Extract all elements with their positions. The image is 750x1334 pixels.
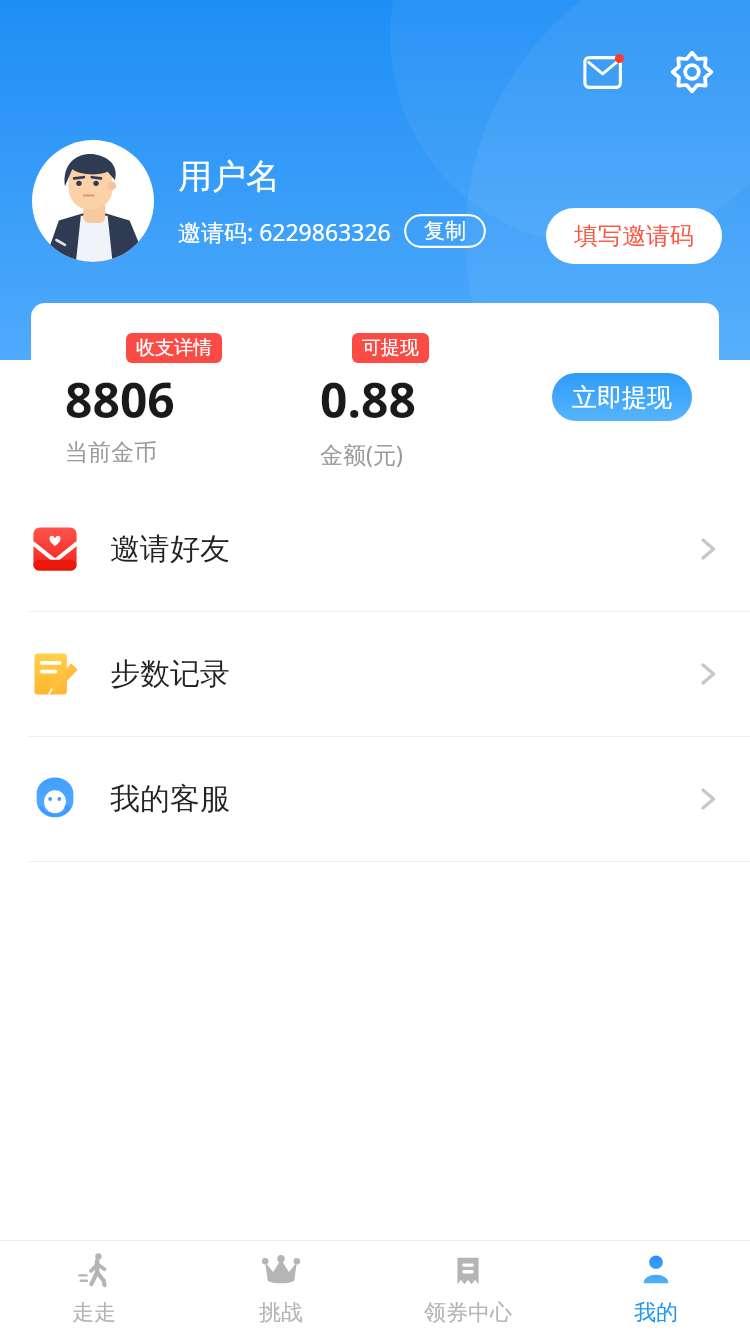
button[interactable]: Messages xyxy=(578,44,634,100)
staticText: 领券中心 xyxy=(424,1299,512,1327)
button[interactable]: 立即提现 xyxy=(552,373,692,421)
button[interactable]: 可提现 xyxy=(352,333,429,363)
staticText: 8806 xyxy=(65,367,175,432)
button[interactable]: Avatar xyxy=(32,140,154,262)
staticText: 复制 xyxy=(424,218,466,244)
staticText: 步数记录 xyxy=(110,655,230,693)
staticText: 邀请好友 xyxy=(110,530,230,568)
staticText: 走走 xyxy=(72,1299,116,1327)
button[interactable]: 我的客服 xyxy=(0,737,750,861)
staticText: 填写邀请码 xyxy=(574,221,694,251)
button[interactable]: 领券中心 xyxy=(374,1241,562,1334)
button[interactable]: 步数记录 xyxy=(0,612,750,736)
staticText: 我的 xyxy=(634,1299,678,1327)
staticText: 用户名 xyxy=(178,155,280,198)
button[interactable]: Settings xyxy=(664,44,720,100)
staticText: 0.88 xyxy=(320,367,416,432)
button[interactable]: 填写邀请码 xyxy=(546,208,722,264)
staticText: 金额(元) xyxy=(320,438,403,469)
button[interactable]: 邀请好友 xyxy=(0,487,750,611)
staticText: 立即提现 xyxy=(572,382,672,413)
staticText: 我的客服 xyxy=(110,780,230,818)
staticText: 当前金币 xyxy=(65,438,157,467)
staticText: 可提现 xyxy=(362,336,419,360)
button[interactable]: 我的 xyxy=(562,1241,750,1334)
button[interactable]: 复制 xyxy=(403,214,487,248)
staticText: 邀请码: 6229863326 xyxy=(178,216,391,247)
button[interactable]: 走走 xyxy=(0,1241,187,1334)
button[interactable]: 收支详情 xyxy=(126,333,222,363)
staticText: 挑战 xyxy=(259,1299,303,1327)
staticText: 收支详情 xyxy=(136,336,212,360)
button[interactable]: 挑战 xyxy=(187,1241,374,1334)
